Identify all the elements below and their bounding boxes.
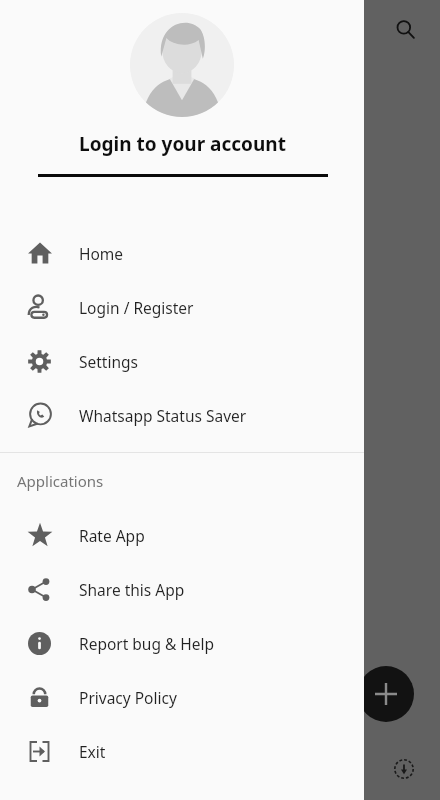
button[interactable]: Report bug & Help (0, 616, 364, 670)
button[interactable]: Profile picture (130, 13, 234, 117)
button[interactable]: Rate App (0, 508, 364, 562)
staticText: Login / Register (79, 297, 194, 318)
staticText: Share this App (79, 579, 185, 600)
button[interactable]: Download (392, 757, 416, 781)
button[interactable]: Add (358, 666, 414, 722)
button[interactable]: Privacy Policy (0, 670, 364, 724)
staticText: Privacy Policy (79, 687, 177, 708)
staticText: Home (79, 243, 124, 264)
button[interactable]: Login to your account (79, 131, 286, 157)
staticText: Settings (79, 351, 138, 372)
staticText: Applications (17, 471, 104, 491)
button[interactable]: Whatsapp Status Saver (0, 388, 364, 442)
button[interactable]: Exit (0, 724, 364, 778)
button[interactable]: Search (388, 12, 422, 46)
button[interactable]: Share this App (0, 562, 364, 616)
staticText: Exit (79, 741, 106, 762)
staticText: Report bug & Help (79, 633, 215, 654)
button[interactable]: Settings (0, 334, 364, 388)
staticText: Rate App (79, 525, 145, 546)
button[interactable]: Login / Register (0, 280, 364, 334)
button[interactable]: Home (0, 226, 364, 280)
staticText: Whatsapp Status Saver (79, 405, 247, 426)
